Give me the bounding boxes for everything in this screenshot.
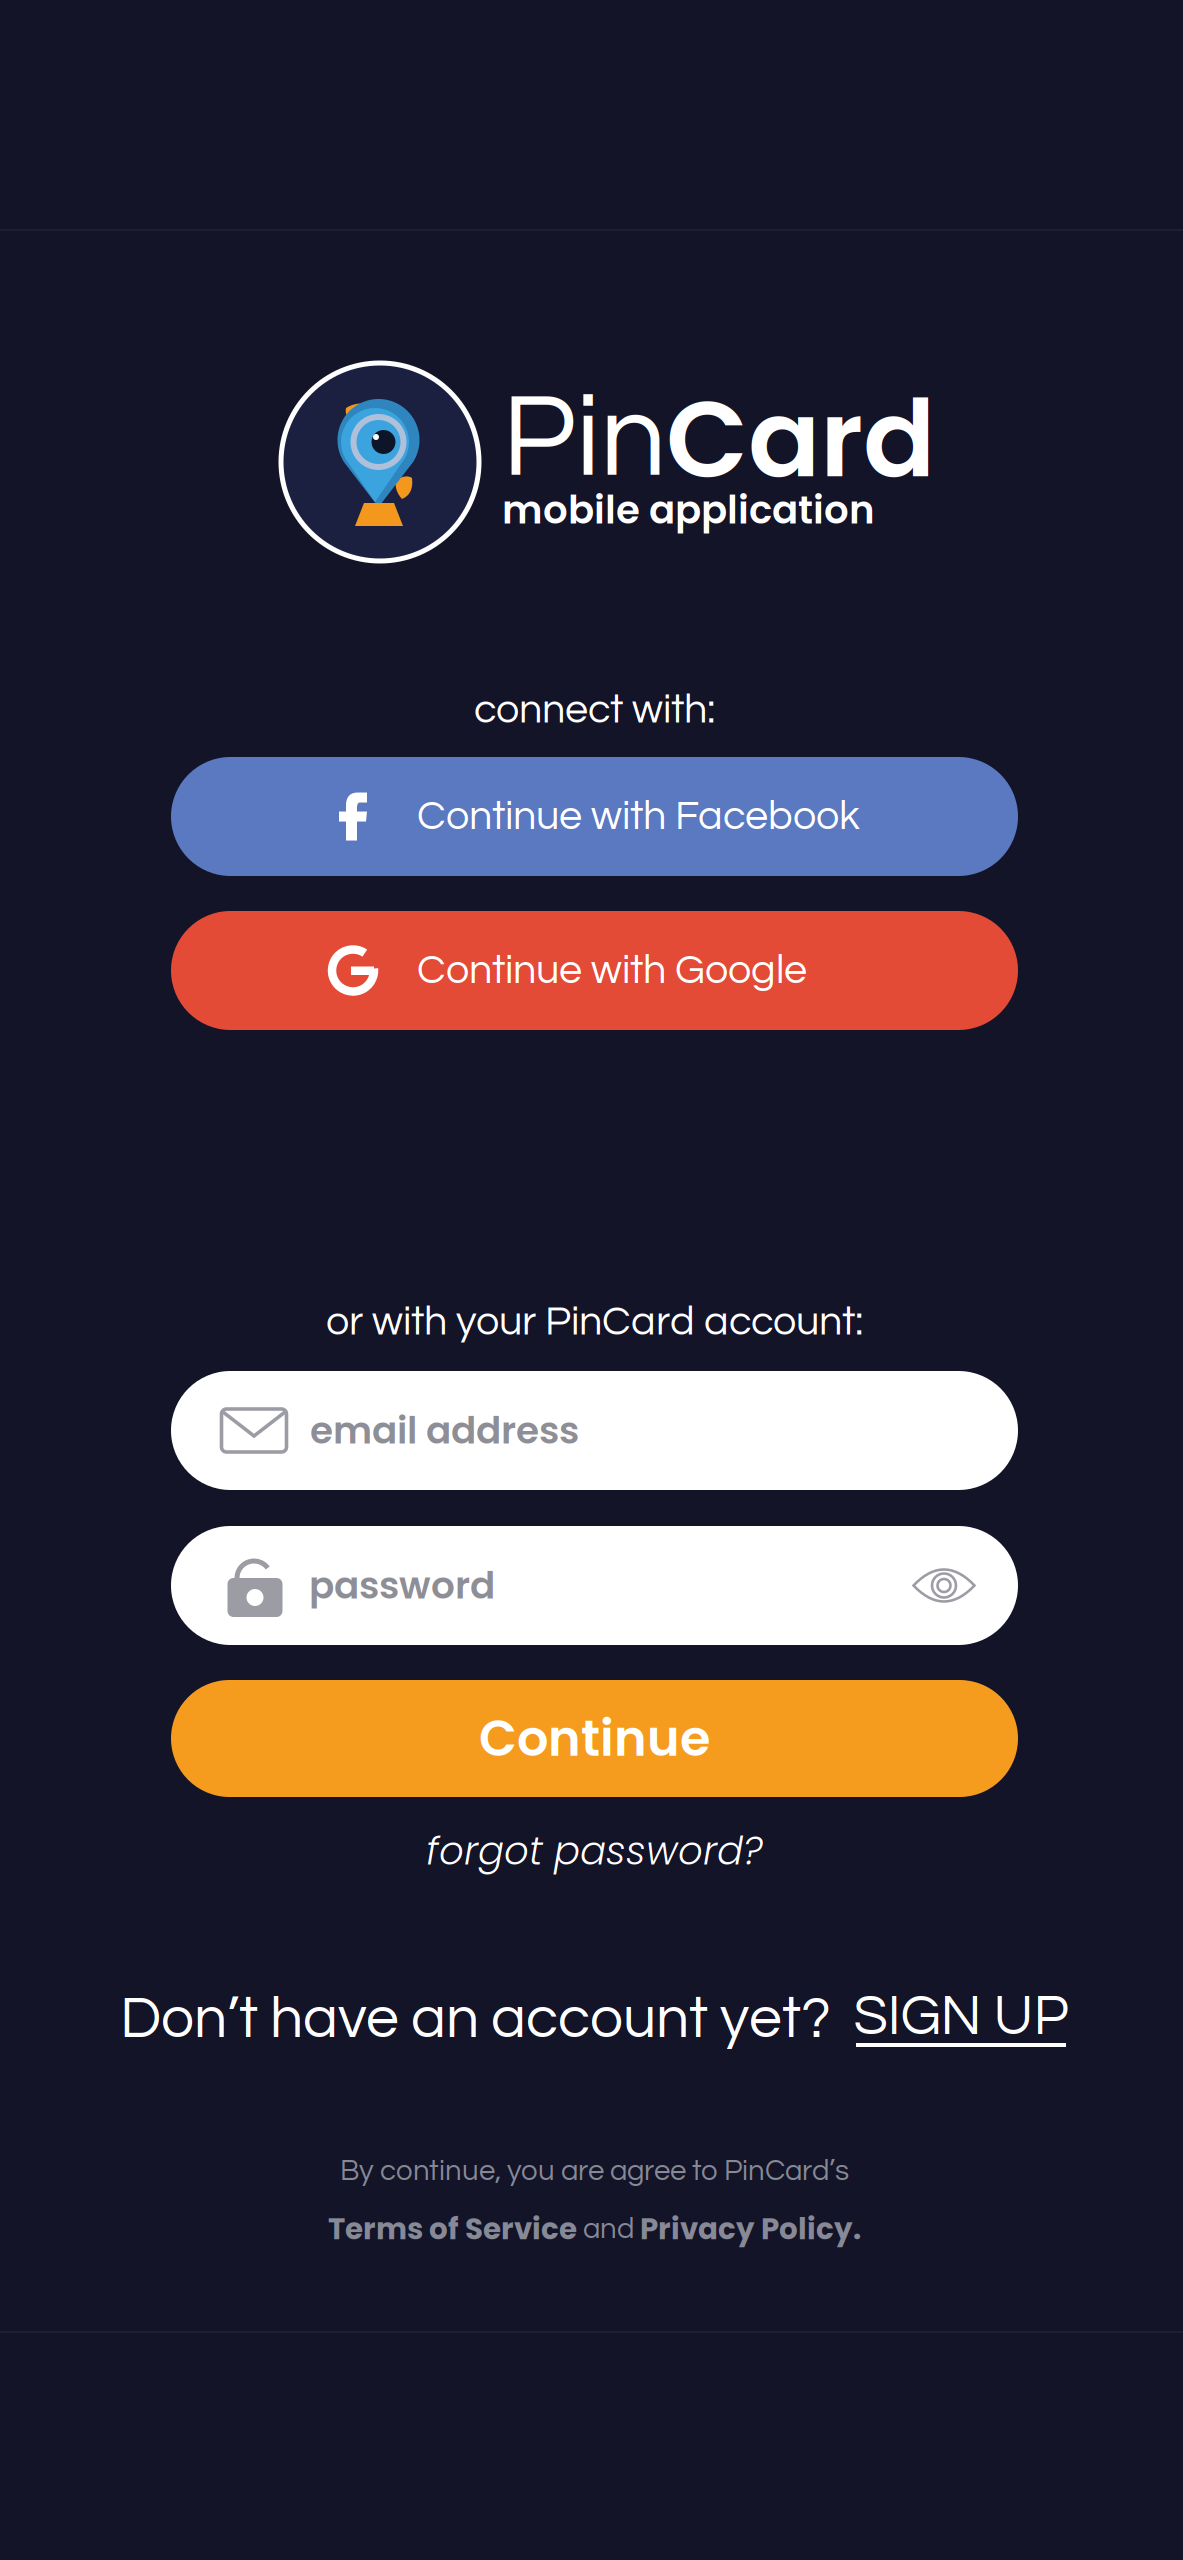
staticText: Pin: [502, 379, 666, 499]
button[interactable]: Continue with Google: [171, 911, 1018, 1030]
staticText: Continue with Google: [417, 949, 807, 992]
staticText: By continue, you are agree to PinCard’s: [340, 2156, 849, 2186]
staticText: Card: [666, 364, 935, 514]
button[interactable]: password: [171, 1526, 1018, 1645]
staticText: mobile application: [502, 483, 875, 537]
button[interactable]: email address: [171, 1371, 1018, 1490]
staticText: Don’t have an account yet?: [120, 1989, 831, 2049]
staticText: SIGN UP: [853, 1988, 1068, 2046]
staticText: email address: [310, 1404, 579, 1457]
button[interactable]: Continue with Facebook: [171, 757, 1018, 876]
button[interactable]: SIGN UP: [853, 1990, 1069, 2048]
staticText: connect with:: [474, 689, 715, 731]
staticText: Terms of Service: [328, 2208, 577, 2250]
staticText: Continue with Facebook: [417, 795, 860, 838]
staticText: forgot password?: [426, 1824, 763, 1878]
button[interactable]: forgot password?: [426, 1827, 763, 1875]
staticText: Continue: [479, 1704, 710, 1773]
button[interactable]: Continue: [171, 1680, 1018, 1797]
staticText: or with your PinCard account:: [326, 1301, 863, 1343]
staticText: and: [577, 2214, 640, 2244]
staticText: Privacy Policy.: [640, 2208, 861, 2250]
staticText: password: [309, 1559, 495, 1612]
